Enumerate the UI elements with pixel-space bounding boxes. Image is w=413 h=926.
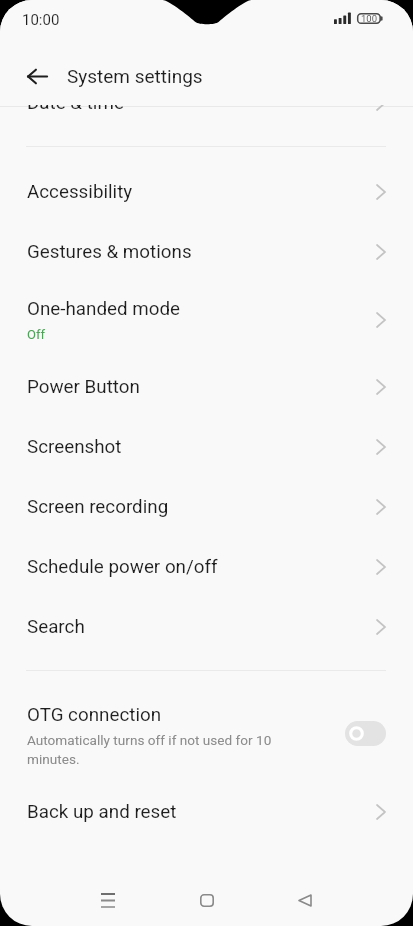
button[interactable]: Screenshot — [0, 417, 413, 477]
button[interactable]: Date & time — [0, 71, 413, 135]
staticText: System settings — [67, 65, 203, 87]
button[interactable]: Search — [0, 597, 413, 657]
staticText: Screenshot — [27, 436, 122, 458]
staticText: OTG connection — [27, 704, 162, 726]
staticText: Power Button — [27, 376, 140, 398]
staticText: Schedule power on/off — [27, 556, 218, 578]
staticText: Gestures & motions — [27, 241, 192, 263]
staticText: 100 — [361, 13, 378, 24]
staticText: Date & time — [27, 92, 124, 114]
button[interactable]: Back — [23, 62, 51, 91]
button[interactable]: Back — [275, 874, 335, 926]
button[interactable]: Power Button — [0, 357, 413, 417]
button[interactable]: Screen recording — [0, 477, 413, 537]
button[interactable]: Back up and reset — [0, 782, 413, 842]
button[interactable]: Recent apps — [78, 874, 138, 926]
staticText: Off — [27, 327, 45, 342]
staticText: 10:00 — [22, 11, 60, 29]
button[interactable]: OTG connection toggle — [345, 721, 386, 746]
button[interactable]: OTG connection — [0, 685, 413, 782]
staticText: Accessibility — [27, 181, 133, 203]
staticText: Search — [27, 616, 85, 638]
staticText: Back up and reset — [27, 801, 177, 823]
staticText: Automatically turns off if not used for … — [27, 730, 301, 768]
staticText: Screen recording — [27, 496, 169, 518]
button[interactable]: Gestures & motions — [0, 222, 413, 282]
button[interactable]: One-handed mode — [0, 282, 413, 357]
button[interactable]: Accessibility — [0, 162, 413, 222]
button[interactable]: Schedule power on/off — [0, 537, 413, 597]
staticText: One-handed mode — [27, 298, 181, 320]
button[interactable]: Home — [177, 874, 237, 926]
